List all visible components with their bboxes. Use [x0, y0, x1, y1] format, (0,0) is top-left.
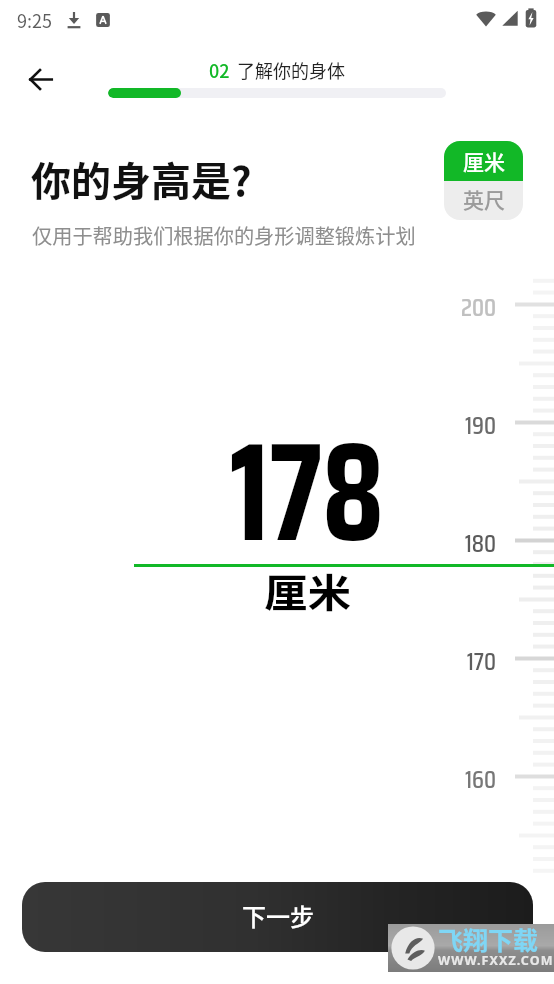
staticText: 厘米	[0, 562, 351, 619]
staticText: WWW.FXXZ.COM	[438, 952, 554, 969]
button[interactable]: 厘米	[444, 141, 523, 181]
staticText: 178	[31, 383, 384, 600]
staticText: 了解你的身体	[237, 57, 345, 83]
staticText: 英尺	[463, 184, 505, 214]
staticText: 190	[436, 406, 496, 445]
staticText: 仅用于帮助我们根据你的身形调整锻炼计划	[32, 221, 416, 250]
staticText: 下一步	[242, 898, 314, 933]
staticText: 厘米	[463, 146, 505, 176]
staticText: 飞翔下载	[438, 921, 539, 957]
staticText: 200	[436, 288, 496, 327]
staticText: 02	[209, 57, 230, 83]
staticText: 180	[436, 524, 496, 563]
staticText: 160	[436, 760, 496, 799]
staticText: 9:25	[17, 7, 52, 33]
button[interactable]: 英尺	[444, 181, 523, 220]
staticText: 你的身高是?	[31, 150, 252, 208]
staticText: 170	[436, 642, 496, 681]
button[interactable]: 下一步	[22, 882, 533, 952]
button[interactable]: Back	[18, 57, 62, 101]
